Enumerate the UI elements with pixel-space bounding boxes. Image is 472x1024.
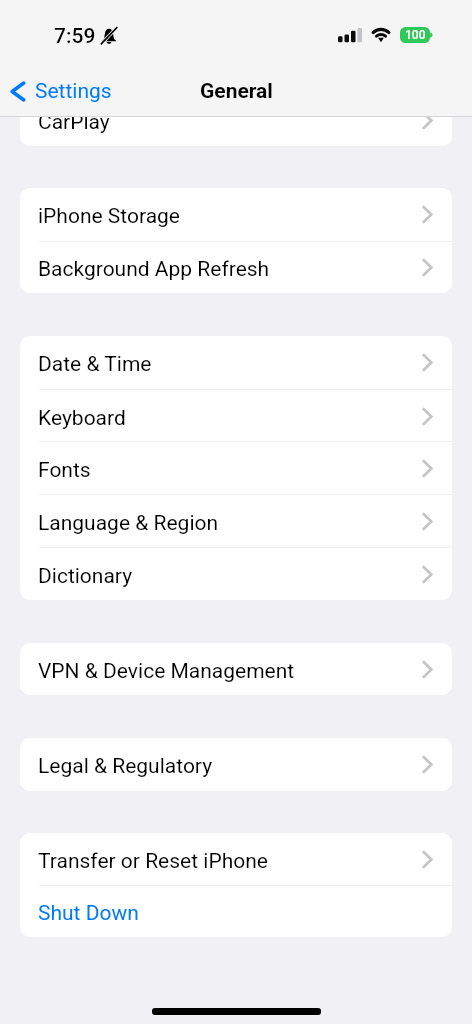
button[interactable]: Fonts xyxy=(20,442,452,494)
staticText: Settings xyxy=(35,79,112,104)
button[interactable]: Language & Region xyxy=(20,495,452,547)
button[interactable]: Keyboard xyxy=(20,390,452,442)
staticText: iPhone Storage xyxy=(38,204,181,229)
button[interactable]: CarPlay xyxy=(20,117,452,146)
staticText: Transfer or Reset iPhone xyxy=(38,849,268,874)
button[interactable]: Shut Down xyxy=(20,886,452,937)
staticText: VPN & Device Management xyxy=(38,659,295,684)
staticText: 7:59 xyxy=(54,24,96,49)
button[interactable]: VPN & Device Management xyxy=(20,643,452,695)
staticText: 100 xyxy=(405,28,426,42)
button[interactable]: Date & Time xyxy=(20,336,452,389)
staticText: Legal & Regulatory xyxy=(38,754,213,779)
staticText: Fonts xyxy=(38,458,91,483)
staticText: Background App Refresh xyxy=(38,257,270,282)
button[interactable]: Transfer or Reset iPhone xyxy=(20,833,452,885)
button[interactable]: Background App Refresh xyxy=(20,242,452,293)
staticText: Date & Time xyxy=(38,352,152,377)
staticText: Keyboard xyxy=(38,406,126,431)
staticText: CarPlay xyxy=(38,117,110,135)
staticText: General xyxy=(200,79,273,104)
staticText: Language & Region xyxy=(38,511,219,536)
button[interactable]: iPhone Storage xyxy=(20,188,452,241)
staticText: Dictionary xyxy=(38,564,133,589)
button[interactable]: Legal & Regulatory xyxy=(20,738,452,791)
staticText: Shut Down xyxy=(38,901,139,926)
button[interactable]: Dictionary xyxy=(20,548,452,600)
button[interactable]: Back to Settings xyxy=(0,75,120,108)
